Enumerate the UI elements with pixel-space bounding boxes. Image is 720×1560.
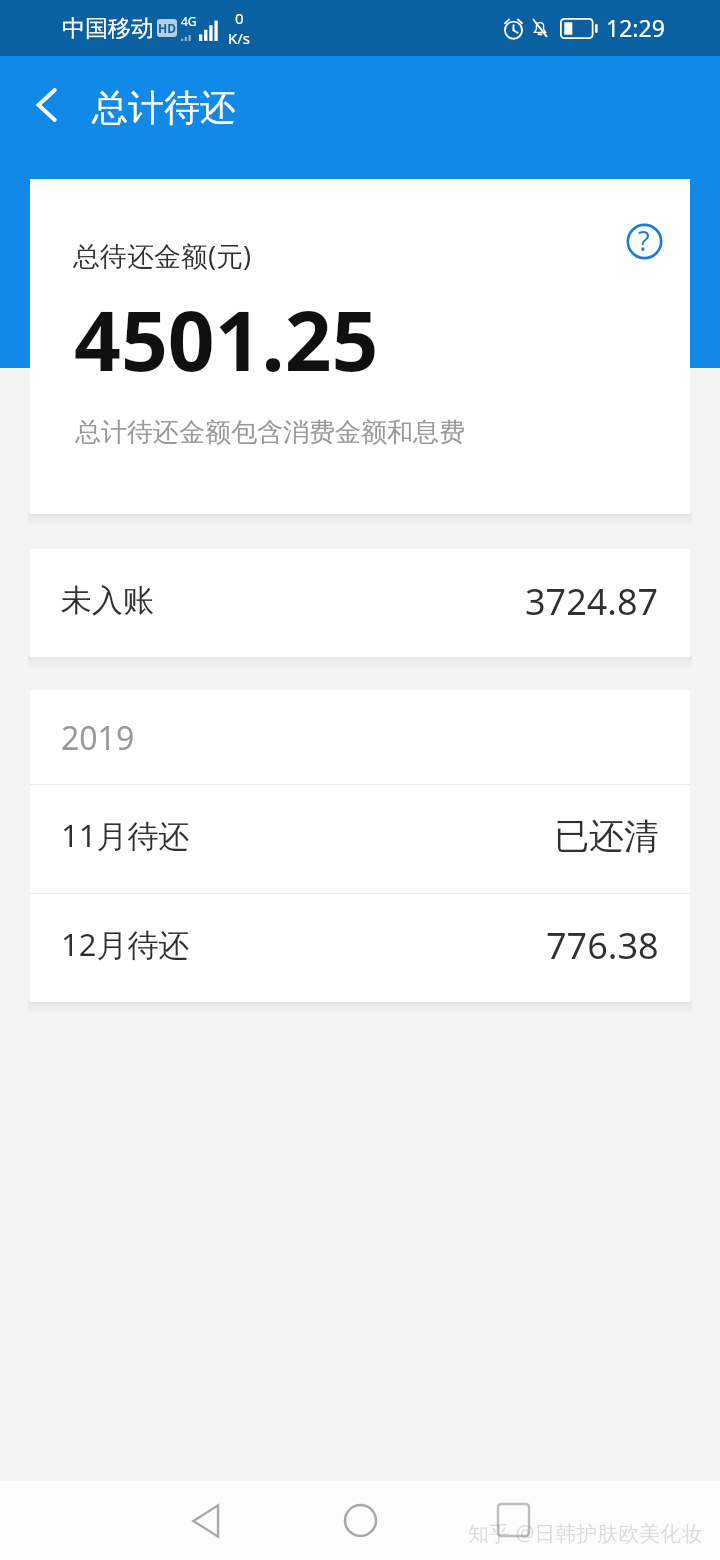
- staticText: 12:29: [606, 12, 665, 43]
- staticText: 11月待还: [61, 814, 190, 856]
- staticText: 4501.25: [74, 283, 379, 395]
- staticText: K/s: [228, 28, 251, 48]
- staticText: 中国移动: [62, 14, 154, 43]
- other: Battery: [560, 18, 599, 39]
- staticText: 776.38: [546, 921, 659, 970]
- other: Silent mode: [530, 17, 550, 39]
- staticText: 3724.87: [525, 577, 659, 626]
- staticText: 总计待还金额包含消费金额和息费: [75, 416, 465, 449]
- button[interactable]: 12月待还: [30, 894, 690, 1002]
- staticText: 知乎 @日韩护肤欧美化妆: [468, 1519, 703, 1548]
- staticText: 4G: [181, 13, 197, 29]
- button[interactable]: Back: [158, 1481, 254, 1560]
- button[interactable]: Recent apps: [465, 1481, 561, 1560]
- button[interactable]: 未入账: [30, 549, 690, 657]
- other: Alarm: [504, 17, 523, 39]
- button[interactable]: Help: [608, 205, 680, 277]
- button[interactable]: Home: [312, 1481, 408, 1560]
- button[interactable]: 11月待还: [30, 785, 690, 893]
- staticText: ?: [638, 222, 650, 259]
- staticText: HD: [158, 20, 176, 36]
- staticText: 12月待还: [61, 923, 190, 965]
- staticText: 总待还金额(元): [73, 237, 252, 274]
- button[interactable]: Back: [3, 52, 93, 158]
- staticText: 2019: [61, 716, 135, 760]
- staticText: 总计待还: [92, 85, 236, 130]
- staticText: 0: [235, 8, 244, 28]
- staticText: 已还清: [554, 814, 659, 858]
- staticText: 未入账: [61, 581, 154, 620]
